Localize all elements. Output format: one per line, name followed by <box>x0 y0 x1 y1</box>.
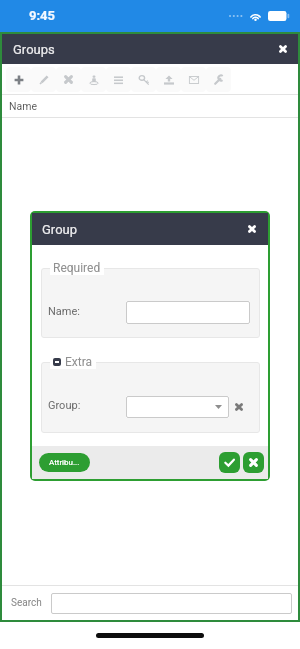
button[interactable]: Attribu... <box>39 453 90 472</box>
staticText: Group: <box>48 399 81 412</box>
button[interactable]: List <box>106 67 131 92</box>
staticText: Required <box>53 261 101 275</box>
button[interactable]: Add <box>6 67 31 92</box>
button[interactable]: Select group <box>126 396 229 418</box>
button[interactable]: Confirm <box>219 452 240 473</box>
button[interactable]: Delete <box>56 67 81 92</box>
button[interactable]: Close <box>268 34 298 64</box>
staticText: Search <box>11 597 42 609</box>
button[interactable]: Collapse Extra <box>53 358 61 366</box>
staticText: 9:45 <box>29 8 56 23</box>
button[interactable]: Cancel <box>243 452 264 473</box>
staticText: Name: <box>48 305 80 318</box>
button[interactable]: Settings <box>206 67 231 92</box>
button[interactable]: Edit <box>31 67 56 92</box>
staticText: Name <box>9 100 37 112</box>
button[interactable]: Import contact <box>81 67 106 92</box>
button[interactable]: Search input <box>51 593 292 614</box>
staticText: Groups <box>13 42 55 57</box>
button[interactable]: Close dialog <box>236 213 268 245</box>
staticText: Group <box>42 222 78 237</box>
staticText: Extra <box>65 355 93 369</box>
button[interactable]: Upload <box>156 67 181 92</box>
staticText: Attribu... <box>49 458 80 467</box>
button[interactable]: Mail <box>181 67 206 92</box>
button[interactable]: Name input <box>126 301 250 324</box>
button[interactable]: Clear group <box>230 398 248 416</box>
button[interactable]: Permissions <box>131 67 156 92</box>
